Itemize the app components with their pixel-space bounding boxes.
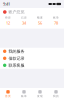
- staticText: 待还: [5, 16, 11, 19]
- staticText: 借款记录: [8, 56, 24, 61]
- staticText: 我的服务: [8, 49, 24, 54]
- staticText: 78: [54, 20, 58, 26]
- button[interactable]: 借款记录: [0, 55, 64, 62]
- staticText: 账单: [53, 16, 59, 19]
- staticText: 34: [22, 20, 26, 26]
- button[interactable]: 联系客服: [0, 62, 64, 69]
- staticText: 账户总览: [9, 9, 25, 14]
- staticText: 12: [6, 20, 10, 26]
- staticText: 发现: [37, 95, 43, 98]
- button[interactable]: 首页: [0, 88, 16, 100]
- button[interactable]: 我的服务: [0, 48, 64, 55]
- staticText: 我的: [53, 95, 59, 98]
- staticText: 额度: [37, 16, 43, 19]
- staticText: 9:41: [3, 1, 10, 7]
- staticText: 56: [38, 20, 42, 26]
- staticText: 联系客服: [8, 63, 24, 68]
- button[interactable]: 账单: [16, 88, 32, 100]
- button[interactable]: 发现: [32, 88, 48, 100]
- staticText: 首页: [5, 95, 11, 98]
- button[interactable]: 我的: [48, 88, 64, 100]
- staticText: 已还: [21, 16, 27, 19]
- staticText: 账单: [21, 95, 27, 98]
